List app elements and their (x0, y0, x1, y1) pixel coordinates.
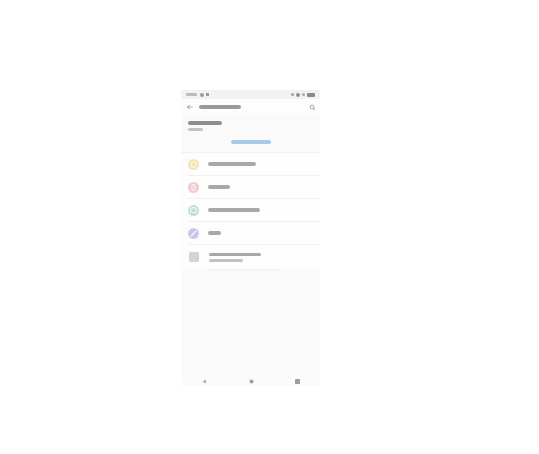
button[interactable] (225, 138, 277, 146)
button[interactable]: Navigate up (181, 99, 199, 115)
button[interactable] (181, 199, 320, 221)
button[interactable]: Home (228, 376, 274, 386)
button[interactable] (181, 176, 320, 198)
button[interactable] (181, 245, 320, 269)
button[interactable]: Back (181, 376, 228, 386)
button[interactable]: Recent apps (274, 376, 320, 386)
button[interactable] (181, 153, 320, 175)
button[interactable]: Search (304, 99, 320, 115)
button[interactable] (181, 222, 320, 244)
